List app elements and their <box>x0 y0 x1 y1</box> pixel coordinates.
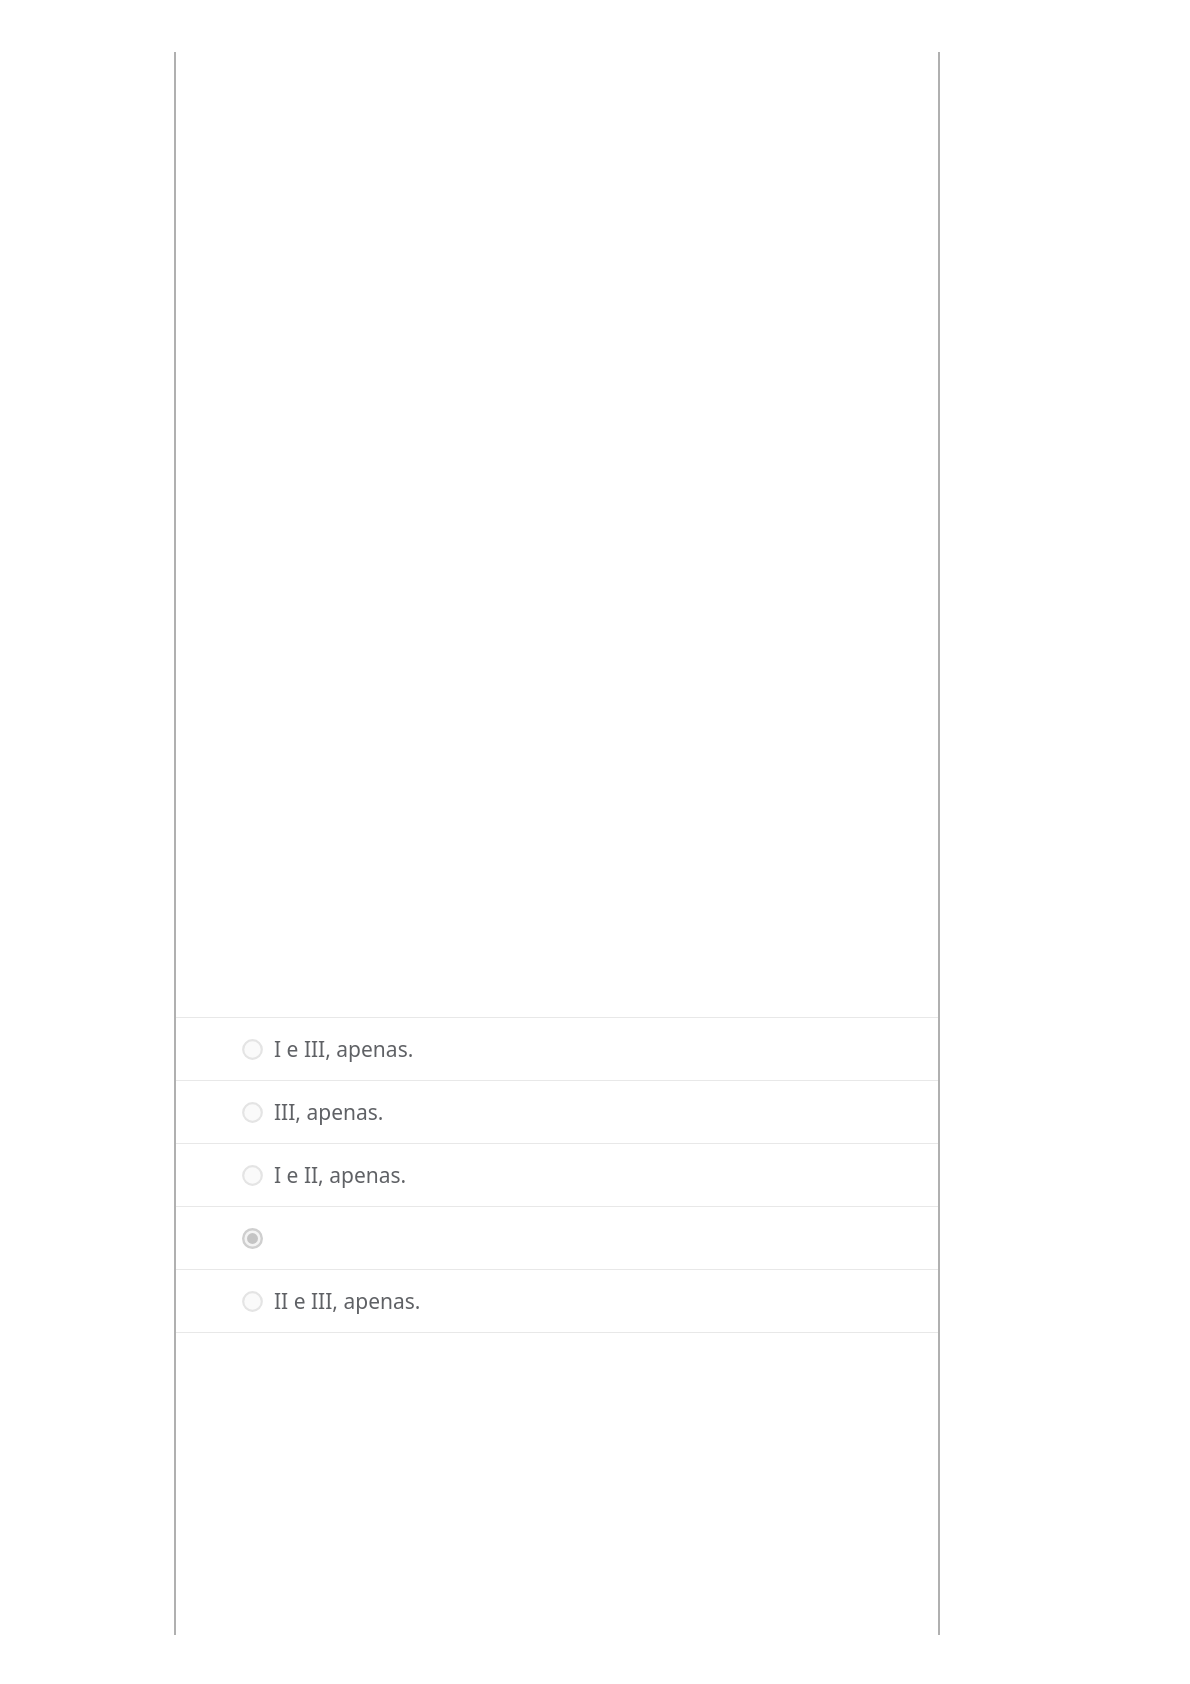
button[interactable]: Selecionar alternativa <box>176 1207 938 1269</box>
button[interactable]: III, apenas. <box>176 1081 938 1143</box>
staticText: III, apenas. <box>274 1098 384 1127</box>
staticText: II e III, apenas. <box>274 1287 421 1316</box>
staticText: I e III, apenas. <box>274 1035 414 1064</box>
button[interactable]: I e II, apenas. <box>176 1144 938 1206</box>
button[interactable]: II e III, apenas. <box>176 1270 938 1332</box>
button[interactable]: I e III, apenas. <box>176 1018 938 1080</box>
staticText: I e II, apenas. <box>274 1161 407 1190</box>
